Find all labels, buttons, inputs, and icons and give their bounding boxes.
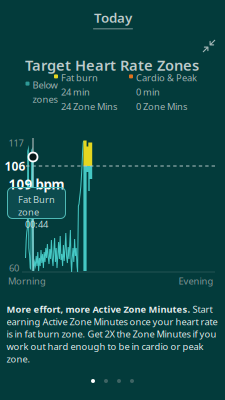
button[interactable]: Collapse — [202, 39, 215, 52]
staticText: zones — [32, 93, 57, 105]
staticText: 117 — [8, 137, 23, 149]
staticText: Morning — [8, 275, 46, 287]
staticText: Target Heart Rate Zones — [25, 55, 199, 75]
staticText: 24 Zone Mins — [61, 100, 117, 113]
staticText: Fat burn — [61, 71, 98, 84]
staticText: Evening — [178, 275, 213, 287]
staticText: 00:44 — [25, 218, 48, 230]
staticText: 24 min — [61, 86, 90, 98]
staticText: 109 bpm — [8, 176, 64, 193]
staticText: Below — [32, 79, 57, 91]
staticText: 106 — [4, 158, 25, 174]
staticText: Today — [94, 9, 132, 26]
button[interactable]: Today — [80, 6, 146, 32]
staticText: 0 Zone Mins — [136, 100, 187, 113]
staticText: 60 — [9, 262, 19, 274]
staticText: Fat Burn zone — [18, 193, 55, 218]
staticText: More effort, more Active Zone Minutes. S… — [6, 303, 217, 365]
staticText: Cardio & Peak — [136, 71, 197, 84]
staticText: 0 min — [136, 86, 160, 98]
